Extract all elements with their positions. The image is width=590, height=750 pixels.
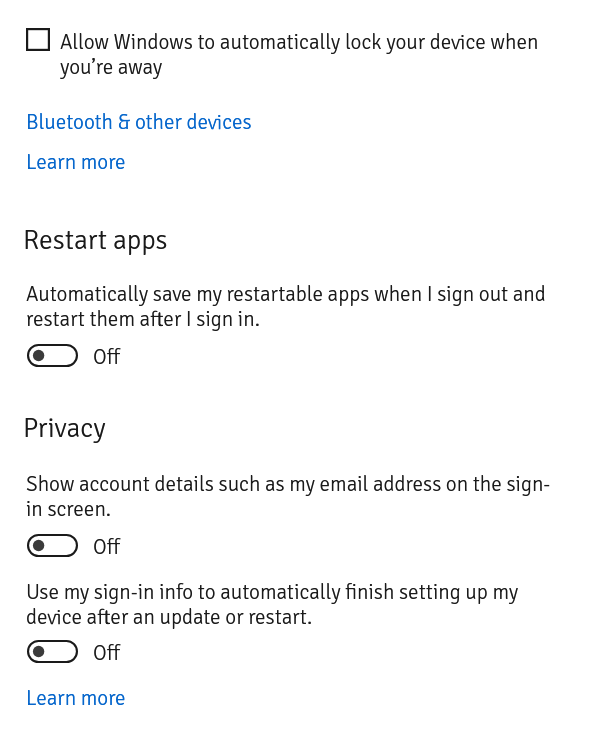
button[interactable]: Show account details on the sign-in scre…: [27, 532, 120, 558]
button[interactable]: Learn more: [26, 149, 126, 175]
other: Allow Windows to automatically lock your…: [26, 28, 50, 51]
staticText: Automatically save my restartable apps w…: [26, 281, 546, 332]
staticText: Restart apps: [23, 223, 168, 257]
staticText: Use my sign-in info to automatically fin…: [26, 579, 519, 630]
staticText: Learn more: [26, 149, 126, 175]
button[interactable]: Use my sign-in info to finish setting up…: [27, 638, 120, 664]
button[interactable]: Automatically save my restartable apps, …: [27, 342, 120, 368]
staticText: Privacy: [23, 411, 106, 445]
staticText: Off: [93, 534, 120, 560]
button[interactable]: Learn more: [26, 685, 126, 711]
staticText: Off: [93, 344, 120, 370]
staticText: Show account details such as my email ad…: [26, 471, 551, 522]
staticText: Off: [93, 640, 120, 666]
staticText: Learn more: [26, 685, 126, 711]
staticText: Allow Windows to automatically lock your…: [60, 29, 539, 80]
button[interactable]: Allow Windows to automatically lock your…: [26, 22, 560, 73]
staticText: Bluetooth & other devices: [26, 109, 252, 135]
button[interactable]: Bluetooth & other devices: [26, 109, 252, 135]
